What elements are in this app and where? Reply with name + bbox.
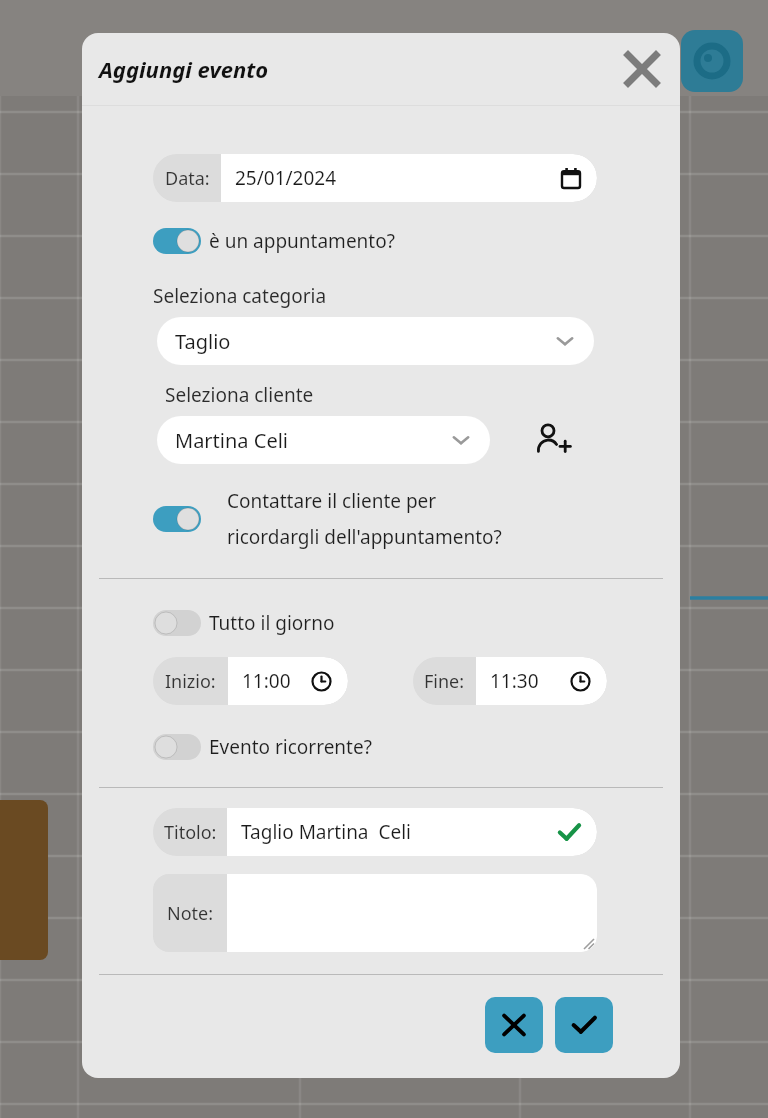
button[interactable]: Evento ricorrente? [99, 725, 663, 769]
button[interactable]: Conferma [555, 997, 613, 1053]
staticText: Seleziona categoria [153, 283, 327, 309]
button[interactable]: Titolo: [153, 808, 597, 856]
button[interactable]: Annulla [485, 997, 543, 1053]
button[interactable]: Taglio [157, 317, 594, 365]
staticText: ricordargli dell'appuntamento? [227, 524, 502, 550]
staticText: è un appuntamento? [209, 228, 395, 254]
staticText: Contattare il cliente per [227, 488, 437, 514]
staticText: Titolo: [164, 820, 217, 845]
staticText: 11:00 [242, 668, 311, 694]
staticText: Tutto il giorno [209, 610, 335, 636]
button[interactable]: Tutto il giorno [99, 601, 663, 645]
staticText: Aggiungi evento [99, 54, 269, 84]
staticText: Seleziona cliente [165, 382, 314, 408]
staticText: Data: [165, 166, 210, 191]
button[interactable]: Martina Celi [157, 416, 490, 464]
button[interactable]: Fine: [413, 657, 607, 705]
button[interactable]: Aggiungi cliente [528, 416, 576, 464]
staticText: Taglio [175, 328, 556, 355]
staticText: Evento ricorrente? [209, 734, 372, 760]
staticText: Taglio Martina Celi [241, 819, 557, 845]
button[interactable]: Inizio: [153, 657, 348, 705]
staticText: 25/01/2024 [235, 165, 561, 191]
button[interactable]: Note: [153, 874, 597, 952]
button[interactable]: Data: [153, 154, 597, 202]
staticText: Martina Celi [175, 427, 452, 454]
staticText: Note: [167, 901, 214, 926]
staticText: Inizio: [165, 669, 216, 694]
button[interactable]: Contattare il cliente per [99, 480, 663, 558]
staticText: Fine: [424, 669, 465, 694]
button[interactable]: Chiudi [618, 45, 666, 93]
staticText: 11:30 [490, 668, 570, 694]
button[interactable]: è un appuntamento? [99, 219, 663, 263]
